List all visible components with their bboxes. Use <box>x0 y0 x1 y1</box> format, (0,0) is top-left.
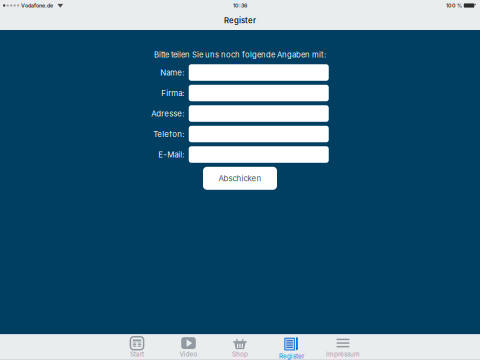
staticText: E-Mail: <box>158 150 184 159</box>
staticText: Abschicken <box>218 173 261 183</box>
staticText: Firma: <box>161 88 184 98</box>
staticText: Shop <box>232 350 248 358</box>
staticText: Impressum <box>326 350 360 358</box>
staticText: Register <box>224 16 256 25</box>
button[interactable]: Abschicken <box>203 167 277 190</box>
staticText: Video <box>179 350 197 358</box>
staticText: Register <box>279 352 304 360</box>
staticText: 10:36 <box>233 2 247 9</box>
button[interactable]: Impressum <box>317 335 369 360</box>
staticText: Bitte teilen Sie uns noch folgende Angab… <box>154 50 326 59</box>
button[interactable]: Video <box>163 335 214 360</box>
button[interactable]: Shop <box>214 335 266 360</box>
staticText: 100 % <box>446 2 462 9</box>
staticText: Adresse: <box>151 109 184 118</box>
staticText: Telefon: <box>153 129 184 139</box>
staticText: Start <box>130 350 144 358</box>
staticText: Name: <box>160 68 184 77</box>
staticText: Vodafone.de <box>21 2 53 9</box>
button[interactable]: Register <box>266 335 317 360</box>
button[interactable]: Start <box>111 335 163 360</box>
